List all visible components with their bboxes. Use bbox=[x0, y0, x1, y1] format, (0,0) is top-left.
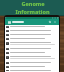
button[interactable]: Navigate up bbox=[7, 20, 11, 24]
staticText: Information bbox=[15, 8, 50, 15]
button[interactable] bbox=[5, 41, 59, 47]
button[interactable] bbox=[5, 61, 59, 65]
button[interactable] bbox=[5, 37, 59, 41]
button[interactable] bbox=[5, 33, 59, 37]
button[interactable] bbox=[5, 69, 59, 72]
button[interactable] bbox=[5, 25, 59, 29]
staticText: Genome bbox=[21, 0, 45, 7]
button[interactable] bbox=[5, 55, 59, 61]
button[interactable] bbox=[5, 29, 59, 33]
button[interactable] bbox=[5, 65, 59, 69]
button[interactable]: Search bbox=[48, 20, 52, 24]
button[interactable] bbox=[5, 47, 59, 51]
button[interactable]: More options bbox=[53, 20, 57, 24]
button[interactable] bbox=[5, 51, 59, 55]
